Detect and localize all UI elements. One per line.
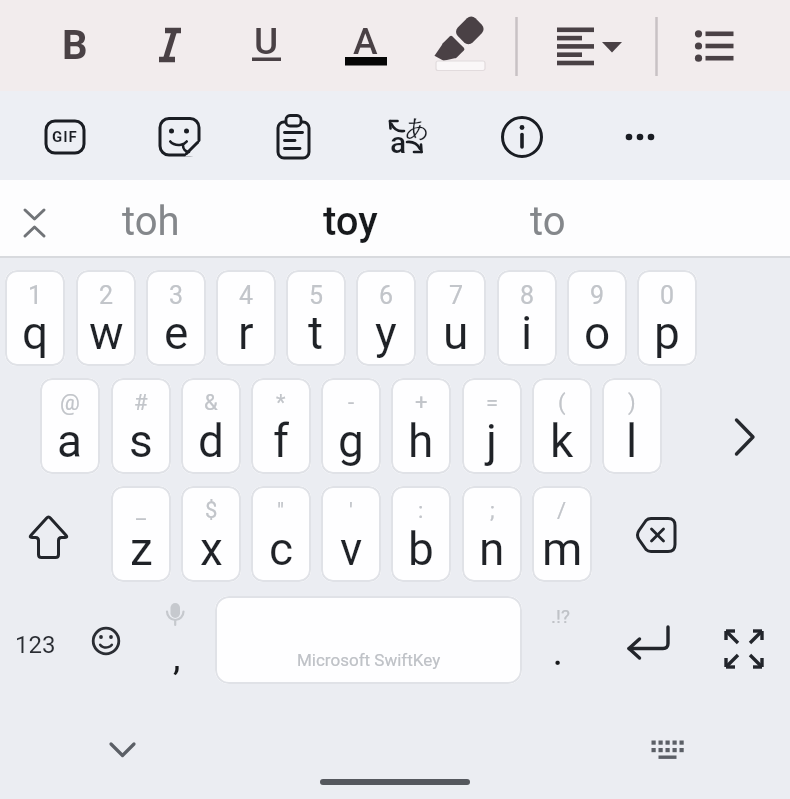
button[interactable] xyxy=(8,190,63,252)
button[interactable] xyxy=(258,183,454,255)
staticText: m xyxy=(542,522,583,576)
button[interactable] xyxy=(706,606,782,692)
button[interactable]: 9 xyxy=(567,270,627,366)
staticText: & xyxy=(204,390,218,416)
staticText: toh xyxy=(122,198,180,245)
button[interactable] xyxy=(145,105,213,169)
staticText: .!? xyxy=(551,605,570,627)
button[interactable]: _ xyxy=(111,486,171,582)
staticText: n xyxy=(479,522,505,576)
button[interactable] xyxy=(75,596,140,684)
button[interactable]: ) xyxy=(602,378,662,474)
staticText: r xyxy=(238,306,254,360)
button[interactable]: & xyxy=(181,378,241,474)
staticText: 123 xyxy=(15,631,56,659)
staticText: - xyxy=(348,390,355,416)
staticText: _ xyxy=(136,498,146,524)
button[interactable] xyxy=(528,596,593,684)
button[interactable] xyxy=(545,10,630,80)
staticText: 6 xyxy=(379,281,394,310)
button[interactable] xyxy=(426,10,496,80)
button[interactable] xyxy=(135,10,205,80)
staticText: c xyxy=(269,522,294,576)
button[interactable]: ( xyxy=(532,378,592,474)
staticText: 2 xyxy=(99,281,114,310)
staticText: to xyxy=(530,198,566,245)
staticText: = xyxy=(486,390,499,416)
button[interactable] xyxy=(40,10,110,80)
button[interactable]: # xyxy=(111,378,171,474)
staticText: ; xyxy=(490,498,495,524)
button[interactable]: 6 xyxy=(356,270,416,366)
button[interactable] xyxy=(5,486,100,582)
staticText: i xyxy=(521,306,533,360)
staticText: l xyxy=(626,414,638,468)
button[interactable]: @ xyxy=(40,378,100,474)
button[interactable]: + xyxy=(391,378,451,474)
staticText: , xyxy=(173,638,181,678)
button[interactable]: ' xyxy=(321,486,381,582)
button[interactable]: 5 xyxy=(286,270,346,366)
staticText: a xyxy=(390,125,407,160)
button[interactable] xyxy=(260,105,328,169)
button[interactable] xyxy=(454,183,650,255)
staticText: y xyxy=(375,306,397,360)
staticText: B xyxy=(62,22,88,69)
button[interactable] xyxy=(706,400,782,476)
button[interactable]: " xyxy=(251,486,311,582)
staticText: ) xyxy=(628,390,636,416)
button[interactable] xyxy=(143,596,211,684)
button[interactable] xyxy=(680,10,745,80)
button[interactable] xyxy=(375,105,443,169)
button[interactable]: 8 xyxy=(497,270,557,366)
staticText: j xyxy=(486,414,498,468)
button[interactable] xyxy=(603,105,671,169)
button[interactable] xyxy=(488,105,556,169)
button[interactable]: ; xyxy=(462,486,522,582)
staticText: d xyxy=(198,414,224,468)
button[interactable] xyxy=(62,183,258,255)
staticText: $ xyxy=(205,498,218,524)
button[interactable] xyxy=(600,596,695,684)
staticText: o xyxy=(584,306,611,360)
button[interactable]: = xyxy=(462,378,522,474)
staticText: 1 xyxy=(28,281,43,310)
button[interactable]: / xyxy=(532,486,592,582)
button[interactable] xyxy=(615,486,700,582)
staticText: " xyxy=(277,498,285,524)
button[interactable]: 4 xyxy=(216,270,276,366)
staticText: b xyxy=(408,522,434,576)
button[interactable]: - xyxy=(321,378,381,474)
button[interactable]: * xyxy=(251,378,311,474)
staticText: * xyxy=(276,390,286,416)
button[interactable]: 1 xyxy=(5,270,65,366)
button[interactable] xyxy=(231,10,301,80)
staticText: 5 xyxy=(309,281,324,310)
button[interactable]: 0 xyxy=(637,270,697,366)
staticText: p xyxy=(654,306,680,360)
staticText: q xyxy=(22,306,49,360)
button[interactable] xyxy=(88,716,156,784)
button[interactable]: 7 xyxy=(426,270,486,366)
button[interactable]: Microsoft SwiftKey xyxy=(215,596,522,684)
button[interactable]: 2 xyxy=(76,270,136,366)
staticText: ( xyxy=(558,390,566,416)
button[interactable] xyxy=(330,10,400,80)
button[interactable]: 3 xyxy=(146,270,206,366)
button[interactable]: : xyxy=(391,486,451,582)
staticText: 0 xyxy=(660,281,675,310)
staticText: ' xyxy=(349,498,353,524)
button[interactable] xyxy=(30,105,98,169)
button[interactable] xyxy=(5,596,75,684)
button[interactable]: $ xyxy=(181,486,241,582)
staticText: / xyxy=(557,498,567,524)
staticText: toy xyxy=(323,198,378,245)
staticText: : xyxy=(418,498,424,524)
staticText: x xyxy=(200,522,223,576)
staticText: h xyxy=(408,414,434,468)
staticText: 8 xyxy=(520,281,535,310)
staticText: k xyxy=(550,414,574,468)
staticText: + xyxy=(415,390,428,416)
button[interactable] xyxy=(634,716,702,784)
staticText: g xyxy=(338,414,364,468)
